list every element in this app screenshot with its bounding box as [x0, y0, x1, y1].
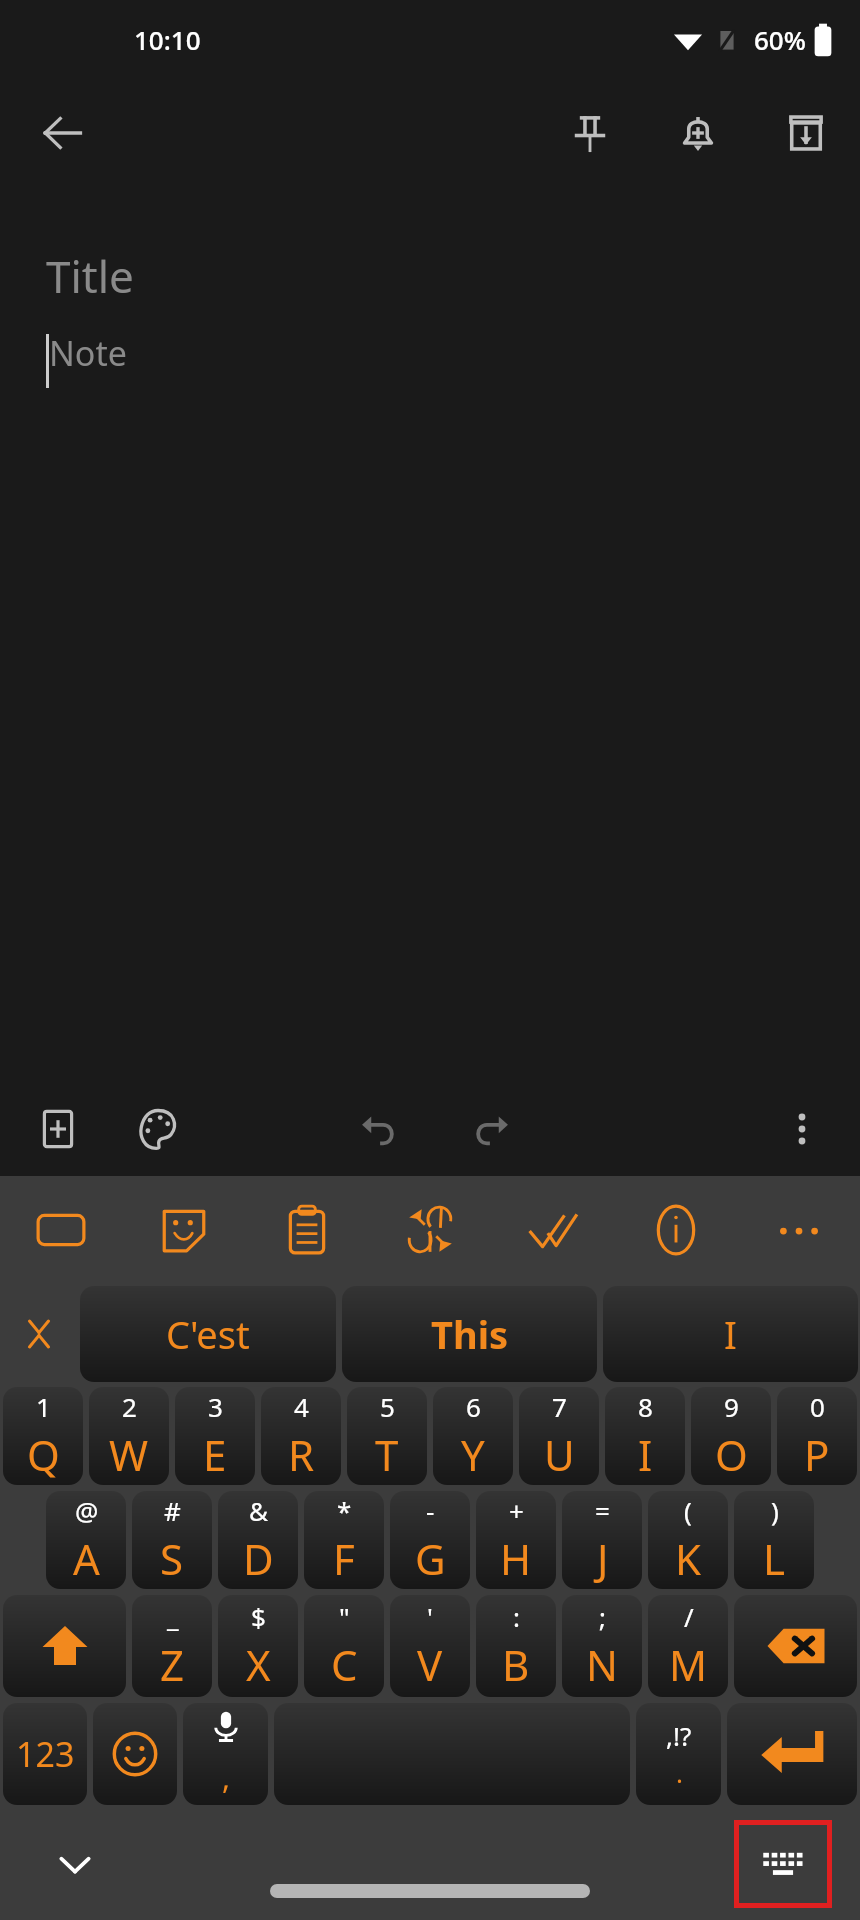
- button[interactable]: 7: [519, 1387, 599, 1485]
- staticText: :: [513, 1599, 520, 1634]
- staticText: Q: [27, 1426, 60, 1483]
- staticText: Note: [49, 330, 127, 376]
- button[interactable]: Translate: [368, 1176, 491, 1284]
- button[interactable]: Enter: [727, 1703, 857, 1805]
- staticText: 8: [638, 1389, 653, 1424]
- staticText: 10:10: [134, 22, 201, 57]
- button[interactable]: ;: [562, 1595, 642, 1697]
- staticText: /: [684, 1599, 694, 1634]
- button[interactable]: Expand: [0, 1284, 78, 1384]
- button[interactable]: Add reminder: [662, 97, 734, 169]
- staticText: 6: [466, 1389, 481, 1424]
- button[interactable]: ,!?: [636, 1703, 721, 1805]
- button[interactable]: Hide keyboard: [42, 1831, 108, 1897]
- button[interactable]: +: [476, 1491, 556, 1589]
- button[interactable]: Backspace: [734, 1595, 857, 1697]
- staticText: H: [500, 1530, 532, 1587]
- button[interactable]: ): [734, 1491, 814, 1589]
- button[interactable]: Emoji: [93, 1703, 177, 1805]
- button[interactable]: 9: [691, 1387, 771, 1485]
- staticText: -: [426, 1493, 435, 1528]
- staticText: #: [164, 1493, 181, 1528]
- button[interactable]: =: [562, 1491, 642, 1589]
- button[interactable]: :: [476, 1595, 556, 1697]
- button[interactable]: Clipboard: [245, 1176, 368, 1284]
- staticText: P: [804, 1426, 830, 1483]
- button[interactable]: 0: [777, 1387, 857, 1485]
- button[interactable]: 1: [3, 1387, 83, 1485]
- staticText: 2: [122, 1389, 137, 1424]
- staticText: &: [249, 1493, 269, 1528]
- button[interactable]: 6: [433, 1387, 513, 1485]
- staticText: D: [243, 1530, 274, 1587]
- button[interactable]: ": [304, 1595, 384, 1697]
- staticText: 9: [724, 1389, 739, 1424]
- staticText: 0: [810, 1389, 825, 1424]
- staticText: =: [595, 1493, 610, 1528]
- staticText: M: [669, 1636, 708, 1693]
- staticText: C: [331, 1636, 358, 1693]
- button[interactable]: Shift: [3, 1595, 126, 1697]
- staticText: Title: [46, 246, 134, 306]
- button[interactable]: 5: [347, 1387, 427, 1485]
- staticText: U: [544, 1426, 575, 1483]
- button[interactable]: C'est: [80, 1286, 336, 1382]
- staticText: $: [251, 1599, 266, 1634]
- button[interactable]: GIF: [0, 1176, 122, 1284]
- button[interactable]: Switch keyboard: [739, 1825, 827, 1903]
- button[interactable]: Redo: [456, 1093, 528, 1165]
- staticText: +: [509, 1493, 524, 1528]
- button[interactable]: I: [603, 1286, 858, 1382]
- staticText: A: [73, 1530, 100, 1587]
- button[interactable]: 123: [3, 1703, 87, 1805]
- button[interactable]: 2: [89, 1387, 169, 1485]
- button[interactable]: Stickers: [122, 1176, 245, 1284]
- button[interactable]: $: [218, 1595, 298, 1697]
- button[interactable]: More: [737, 1176, 860, 1284]
- button[interactable]: Info: [614, 1176, 737, 1284]
- button[interactable]: Archive: [770, 97, 842, 169]
- staticText: ,: [222, 1757, 231, 1798]
- button[interactable]: 8: [605, 1387, 685, 1485]
- staticText: C'est: [166, 1308, 250, 1360]
- button[interactable]: Back: [24, 95, 100, 171]
- staticText: K: [675, 1530, 701, 1587]
- button[interactable]: Pin: [554, 97, 626, 169]
- button[interactable]: Space: [274, 1703, 630, 1805]
- staticText: J: [597, 1530, 609, 1587]
- staticText: 4: [294, 1389, 309, 1424]
- button[interactable]: &: [218, 1491, 298, 1589]
- staticText: 123: [16, 1731, 75, 1777]
- staticText: V: [417, 1636, 443, 1693]
- button[interactable]: Undo: [342, 1093, 414, 1165]
- staticText: Y: [461, 1426, 485, 1483]
- button[interactable]: /: [648, 1595, 728, 1697]
- staticText: W: [109, 1426, 149, 1483]
- staticText: T: [375, 1426, 399, 1483]
- button[interactable]: ': [390, 1595, 470, 1697]
- button[interactable]: Color palette: [122, 1093, 194, 1165]
- staticText: (: [684, 1493, 692, 1528]
- button[interactable]: Voice input: [183, 1703, 268, 1805]
- staticText: X: [246, 1636, 271, 1693]
- button[interactable]: This: [342, 1286, 597, 1382]
- staticText: 7: [552, 1389, 567, 1424]
- staticText: 5: [380, 1389, 395, 1424]
- staticText: ,!?: [666, 1718, 692, 1753]
- button[interactable]: #: [132, 1491, 212, 1589]
- button[interactable]: Proofread: [491, 1176, 614, 1284]
- staticText: F: [333, 1530, 355, 1587]
- staticText: *: [337, 1493, 352, 1528]
- button[interactable]: Add: [22, 1093, 94, 1165]
- button[interactable]: *: [304, 1491, 384, 1589]
- button[interactable]: 4: [261, 1387, 341, 1485]
- button[interactable]: (: [648, 1491, 728, 1589]
- button[interactable]: More options: [766, 1093, 838, 1165]
- button[interactable]: @: [46, 1491, 126, 1589]
- staticText: ": [339, 1599, 350, 1634]
- button[interactable]: 3: [175, 1387, 255, 1485]
- staticText: G: [415, 1530, 446, 1587]
- button[interactable]: _: [132, 1595, 212, 1697]
- staticText: S: [160, 1530, 184, 1587]
- button[interactable]: -: [390, 1491, 470, 1589]
